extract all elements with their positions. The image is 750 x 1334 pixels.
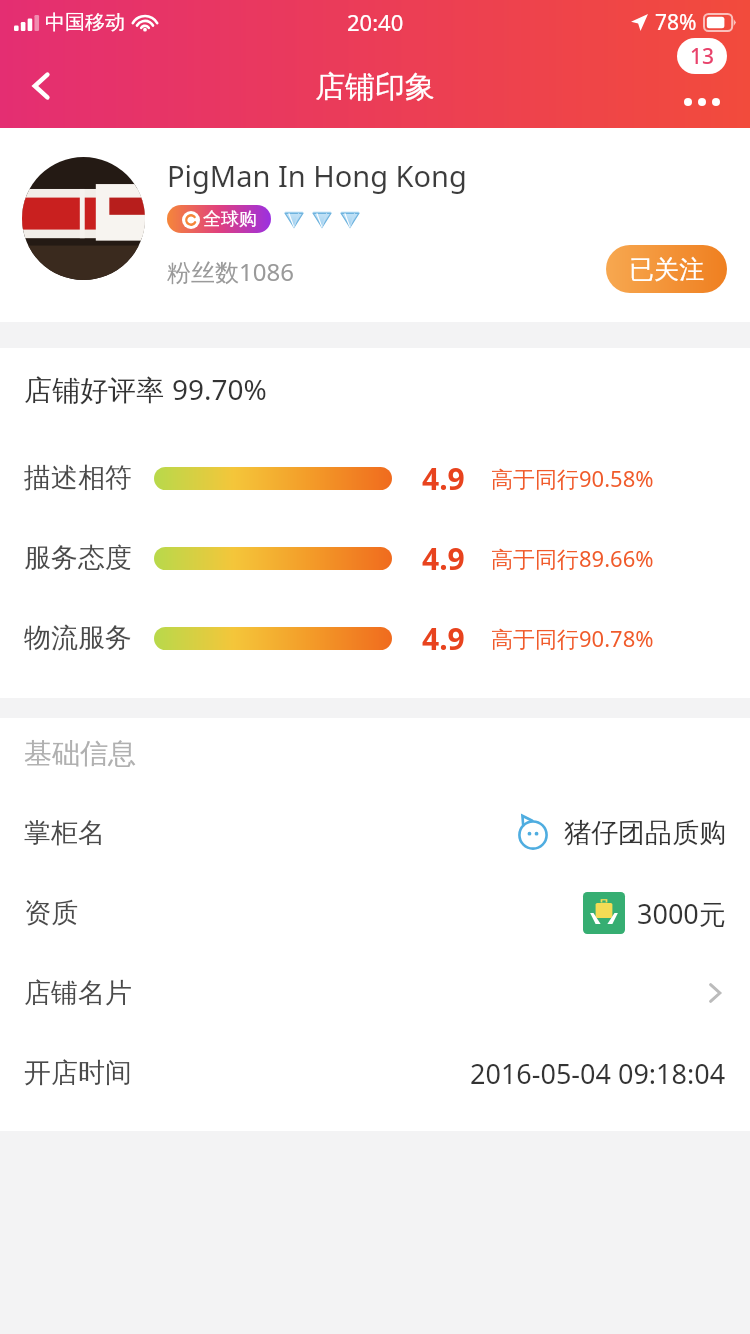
staticText: 4.9 xyxy=(422,618,465,659)
staticText: 资质 xyxy=(24,896,78,930)
staticText: 20:40 xyxy=(347,7,404,37)
button[interactable]: 店铺名片 xyxy=(0,953,750,1033)
staticText: 猪仔团品质购 xyxy=(564,816,726,850)
staticText: 99.70% xyxy=(172,370,267,408)
staticText: PigMan In Hong Kong xyxy=(167,156,467,195)
staticText: 店铺名片 xyxy=(24,976,132,1010)
staticText: 已关注 xyxy=(629,254,704,285)
staticText: 中国移动 xyxy=(45,10,125,35)
staticText: 物流服务 xyxy=(24,621,132,655)
button[interactable]: Shop avatar xyxy=(22,157,145,280)
staticText: 2016-05-04 09:18:04 xyxy=(470,1055,726,1092)
button[interactable]: 已关注 xyxy=(606,245,727,293)
staticText: 4.9 xyxy=(422,458,465,499)
staticText: 3000元 xyxy=(637,895,726,932)
staticText: 掌柜名 xyxy=(24,816,105,850)
staticText: 高于同行90.78% xyxy=(491,623,654,653)
staticText: 基础信息 xyxy=(24,736,136,771)
staticText: 描述相符 xyxy=(24,461,132,495)
staticText: 开店时间 xyxy=(24,1056,132,1090)
staticText: 78% xyxy=(655,8,697,37)
staticText: 13 xyxy=(690,42,715,71)
staticText: 服务态度 xyxy=(24,541,132,575)
button[interactable]: Back xyxy=(8,44,76,128)
staticText: 粉丝数1086 xyxy=(167,255,294,288)
staticText: 店铺好评率 xyxy=(24,370,172,408)
staticText: 高于同行90.58% xyxy=(491,463,654,493)
staticText: 店铺印象 xyxy=(315,68,435,106)
staticText: 高于同行89.66% xyxy=(491,543,654,573)
staticText: 4.9 xyxy=(422,538,465,579)
staticText: 全球购 xyxy=(203,208,257,231)
button[interactable]: More options xyxy=(668,38,736,114)
